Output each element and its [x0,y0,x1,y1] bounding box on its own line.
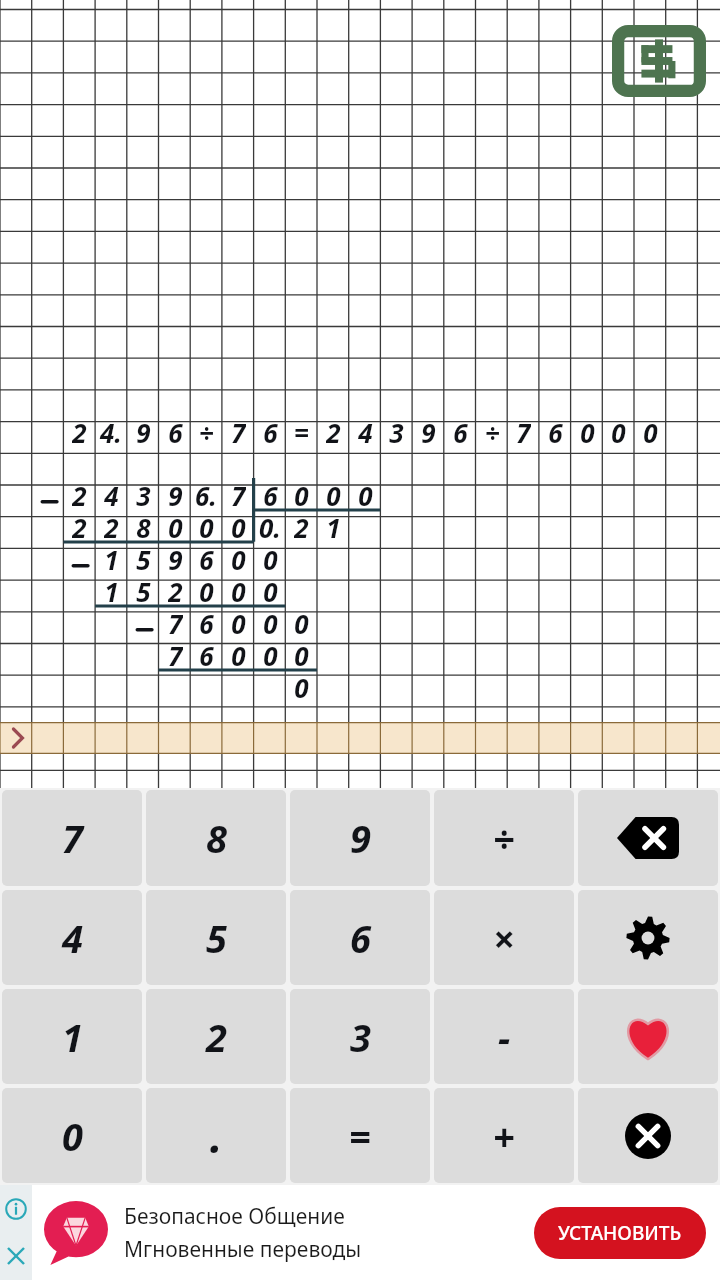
staticText: 1 [326,510,341,542]
button[interactable]: 9 [290,790,430,886]
staticText: + [493,1110,515,1162]
staticText: 6.0 [190,478,222,510]
staticText: 6 [168,415,183,447]
staticText: Безопасное Общение [124,1202,345,1231]
button[interactable]: = [290,1088,430,1183]
staticText: 0 [326,478,341,510]
staticText: 4 [358,415,373,447]
button[interactable]: 5 [146,890,286,985]
button[interactable]: Close ad [0,1232,32,1280]
staticText: 0 [611,415,626,447]
staticText: 0 [62,1110,83,1162]
staticText: − [498,1011,511,1063]
staticText: 9 [136,415,151,447]
button[interactable]: 2 [146,989,286,1084]
staticText: 8 [136,510,151,542]
staticText: 9 [350,812,371,864]
staticText: 6 [199,606,214,638]
staticText: 6 [548,415,563,447]
button[interactable]: Remove ads [612,25,706,97]
staticText: 7 [231,478,246,510]
staticText: 2 [72,478,87,510]
staticText: 0 [294,606,309,638]
staticText: 3 [136,478,151,510]
staticText: 0 [580,415,595,447]
staticText: 0 [263,606,278,638]
button[interactable]: ÷ [434,790,574,886]
staticText: 8 [206,812,227,864]
button[interactable]: 8 [146,790,286,886]
button[interactable]: Favorite [578,989,718,1084]
staticText: 6 [453,415,468,447]
button[interactable]: УСТАНОВИТЬ [534,1207,706,1259]
staticText: ÷ [485,415,500,447]
staticText: УСТАНОВИТЬ [558,1220,682,1246]
staticText: 2 [104,510,119,542]
staticText: 2 [294,510,309,542]
button[interactable]: 0 [2,1088,142,1183]
staticText: 5 [206,912,227,964]
staticText: 0 [231,638,246,670]
button[interactable]: Settings [578,890,718,985]
staticText: 6 [350,912,371,964]
staticText: 0 [263,542,278,574]
staticText: 0 [643,415,658,447]
staticText: 7 [168,606,183,638]
button[interactable]: − [434,989,574,1084]
staticText: 4.3 [95,415,127,447]
staticText: 0 [263,574,278,606]
button[interactable]: 3 [290,989,430,1084]
button[interactable]: Ad info [0,1185,32,1232]
staticText: 0 [231,542,246,574]
staticText: 2 [326,415,341,447]
staticText: 4 [104,478,119,510]
staticText: 1 [62,1011,83,1063]
staticText: 0 [294,638,309,670]
staticText: 2 [206,1011,227,1063]
staticText: 3 [389,415,404,447]
button[interactable]: + [434,1088,574,1183]
button[interactable]: 4 [2,890,142,985]
staticText: 5 [136,542,151,574]
staticText: 0.3 [254,510,286,542]
staticText: 0 [231,510,246,542]
staticText: . [210,1106,223,1166]
staticText: = [349,1110,371,1162]
button[interactable]: Clear [578,1088,718,1183]
staticText: Мгновенные переводы [124,1235,362,1264]
staticText: 7 [516,415,531,447]
staticText: 0 [294,670,309,702]
staticText: 7 [168,638,183,670]
staticText: 5 [136,574,151,606]
button[interactable]: × [434,890,574,985]
staticText: ÷ [493,812,515,864]
staticText: 6 [263,478,278,510]
button[interactable]: 1 [2,989,142,1084]
button[interactable] [0,722,720,754]
staticText: 3 [350,1011,371,1063]
staticText: 9 [421,415,436,447]
staticText: 6 [199,542,214,574]
staticText: 9 [168,542,183,574]
staticText: 2 [72,510,87,542]
staticText: 1 [104,542,119,574]
staticText: 0 [231,606,246,638]
staticText: 1 [104,574,119,606]
button[interactable]: 7 [2,790,142,886]
staticText: 7 [231,415,246,447]
button[interactable]: 6 [290,890,430,985]
staticText: 0 [199,510,214,542]
staticText: = [294,415,309,447]
staticText: 0 [231,574,246,606]
staticText: 9 [168,478,183,510]
staticText: 0 [199,574,214,606]
staticText: 0 [263,638,278,670]
staticText: 0 [294,478,309,510]
button[interactable]: . [146,1088,286,1183]
staticText: × [493,912,515,964]
staticText: ÷ [199,415,214,447]
staticText: 2 [72,415,87,447]
staticText: 0 [358,478,373,510]
button[interactable]: Backspace [578,790,718,886]
staticText: 0 [168,510,183,542]
